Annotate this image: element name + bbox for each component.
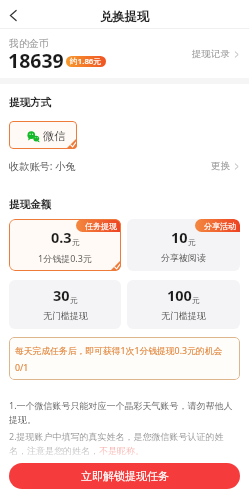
staticText: 元: [72, 237, 80, 247]
staticText: 分享活动: [204, 221, 236, 231]
staticText: 18639: [8, 47, 64, 74]
staticText: 2.提现账户中填写的真实姓名，是您微信账号认证的姓名，注意是您的姓名，不是昵称。: [9, 430, 240, 457]
staticText: 元: [188, 237, 196, 247]
staticText: 收款账号: 小兔: [9, 159, 76, 173]
button[interactable]: Back: [2, 4, 24, 26]
button[interactable]: 0.3: [9, 219, 121, 271]
staticText: 30: [53, 285, 70, 305]
button[interactable]: 微信: [9, 121, 77, 149]
button[interactable]: 更换: [211, 160, 240, 172]
staticText: 提现金额: [9, 198, 51, 211]
staticText: 更换: [211, 160, 230, 172]
staticText: 立即解锁提现任务: [81, 469, 169, 483]
staticText: 10: [171, 227, 188, 247]
button[interactable]: 立即解锁提现任务: [9, 463, 240, 489]
staticText: 100: [167, 285, 192, 305]
staticText: 元: [70, 295, 78, 305]
button[interactable]: 30: [9, 280, 121, 329]
staticText: 微信: [43, 129, 66, 143]
button[interactable]: 10: [127, 219, 240, 271]
staticText: 无门槛提现: [43, 310, 88, 321]
staticText: 任务提现: [85, 221, 117, 231]
button[interactable]: 提现记录: [192, 48, 240, 60]
staticText: 我的金币: [9, 37, 49, 50]
staticText: 0.3: [51, 227, 72, 247]
staticText: 1.一个微信账号只能对应一个晶彩天气账号，请勿帮他人提现。: [9, 399, 240, 426]
staticText: 1分钱提0.3元: [38, 252, 92, 264]
staticText: 无门槛提现: [161, 310, 206, 321]
staticText: 元: [192, 295, 200, 305]
button[interactable]: 100: [127, 280, 240, 329]
staticText: 每天完成任务后，即可获得1次1分钱提现0.3元的机会 0/1: [15, 345, 223, 373]
staticText: 约1.86元: [70, 56, 102, 67]
staticText: 提现记录: [192, 48, 230, 60]
staticText: 兑换提现: [100, 9, 150, 24]
staticText: 分享被阅读: [161, 252, 206, 263]
staticText: 提现方式: [9, 96, 51, 109]
